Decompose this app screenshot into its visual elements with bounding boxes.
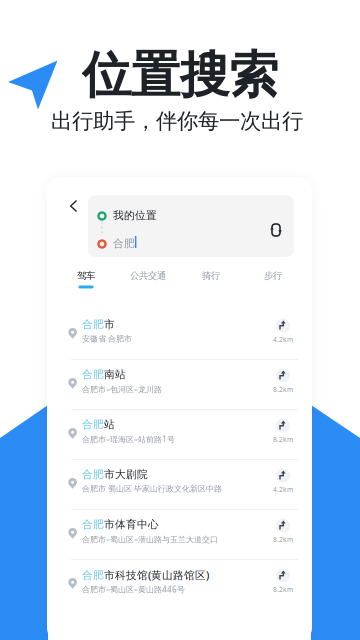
staticText: 合肥市–蜀山区–黄山路446号 [82,584,185,595]
staticText: 合肥 [82,318,104,331]
staticText: 合肥市 蜀山区 毕家山行政文化新区中路 [82,484,222,494]
staticText: 位置搜索 [82,45,278,106]
button[interactable]: Back [60,191,86,221]
staticText: 8.2km [273,435,293,444]
button[interactable]: 驾车 [73,268,99,290]
staticText: 驾车 [77,270,95,281]
staticText: 合肥市–蜀山区–潜山路与玉兰大道交口 [82,534,218,545]
staticText: 安徽省 合肥市 [82,334,132,344]
staticText: 8.2km [273,585,293,594]
button[interactable]: Swap origin and destination [265,216,289,240]
staticText: 市体育中心 [104,518,159,531]
button[interactable]: 公共交通 [126,268,170,290]
staticText: 合肥 [82,468,104,481]
staticText: 8.2km [273,535,293,544]
staticText: 骑行 [202,270,220,281]
button[interactable]: 合肥 [47,509,312,559]
staticText: 合肥市–包河区–龙川路 [82,384,162,395]
staticText: 8.2km [273,385,293,394]
staticText: 南站 [104,368,126,381]
staticText: 合肥 [82,568,104,582]
button[interactable]: 骑行 [198,268,224,290]
staticText: 合肥市–瑶海区–站前路1号 [82,434,175,445]
button[interactable]: 步行 [260,268,286,290]
button[interactable]: 合肥 [47,309,312,359]
button[interactable]: 合肥 [47,459,312,509]
staticText: 合肥 [82,418,104,431]
staticText: 公共交通 [130,270,166,281]
button[interactable]: 合肥 [47,409,312,459]
staticText: 站 [104,418,115,431]
staticText: 市科技馆(黄山路馆区) [104,568,209,582]
staticText: 合肥 [82,518,104,531]
staticText: 4.2km [273,485,293,494]
button[interactable]: 合肥 [47,359,312,409]
staticText: 市 [104,318,115,331]
button[interactable]: 合肥 [47,559,312,609]
staticText: 市大剧院 [104,468,148,481]
staticText: 合肥 [82,368,104,381]
staticText: 4.2km [273,335,293,344]
staticText: 我的位置 [113,209,157,222]
staticText: 出行助手，伴你每一次出行 [51,108,303,134]
staticText: 步行 [264,270,282,281]
staticText: 合肥 [113,237,135,250]
